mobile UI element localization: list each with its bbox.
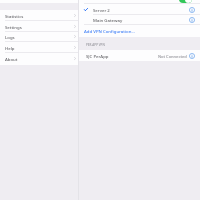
staticText: Server 2: [93, 7, 110, 13]
staticText: SJC PerApp: [86, 53, 109, 59]
button[interactable]: Add VPN Configuration...: [79, 25, 200, 36]
staticText: Help: [5, 45, 15, 51]
staticText: Main Gateway: [93, 17, 123, 23]
button[interactable]: Server 2: [79, 4, 200, 15]
button[interactable]: SJC PerApp: [79, 50, 200, 61]
staticText: Logs: [5, 34, 15, 40]
button[interactable]: More Info: [189, 17, 195, 23]
staticText: Not Connected: [158, 54, 187, 59]
staticText: Statistics: [5, 13, 24, 19]
button[interactable]: [79, 0, 200, 3]
button[interactable]: Help: [0, 42, 78, 53]
button[interactable]: About: [0, 53, 78, 64]
staticText: Settings: [5, 24, 22, 30]
button[interactable]: More Info: [189, 53, 195, 59]
button[interactable]: More Info: [189, 7, 195, 13]
button[interactable]: Logs: [0, 31, 78, 42]
button[interactable]: VPN on/off switch: [179, 0, 192, 3]
staticText: About: [5, 56, 18, 62]
staticText: Add VPN Configuration...: [84, 28, 135, 34]
button[interactable]: Main Gateway: [79, 14, 200, 25]
button[interactable]: Statistics: [0, 10, 78, 21]
button[interactable]: Settings: [0, 21, 78, 32]
staticText: PER-APP VPN: [86, 43, 105, 47]
